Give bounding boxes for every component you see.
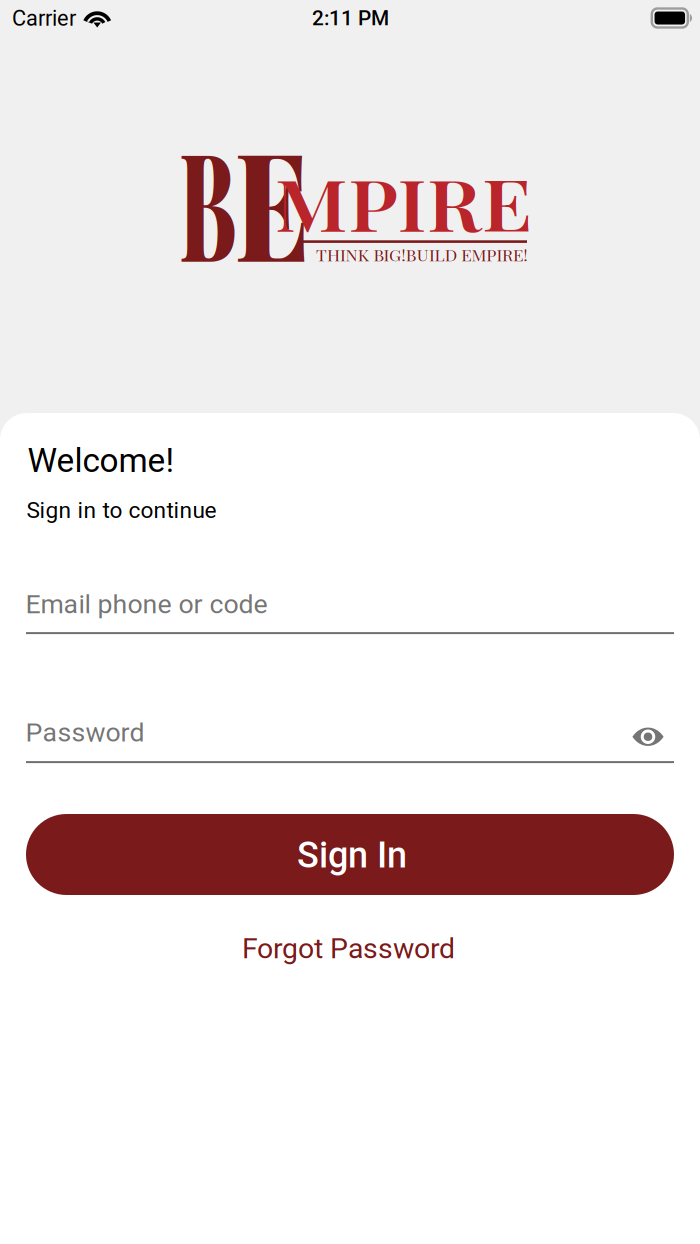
staticText: MPIRE <box>275 155 510 253</box>
button[interactable]: Show password <box>623 716 673 758</box>
staticText: Sign In <box>297 834 407 876</box>
staticText: Carrier <box>12 6 76 31</box>
staticText: Password <box>25 717 144 748</box>
staticText: Email phone or code <box>25 588 267 620</box>
button[interactable]: Forgot Password <box>242 932 482 978</box>
staticText: B <box>179 100 282 295</box>
staticText: Sign in to continue <box>27 497 217 524</box>
staticText: 2:11 PM <box>312 6 389 30</box>
button[interactable]: Sign In <box>26 814 674 895</box>
staticText: Forgot Password <box>242 932 455 965</box>
staticText: THINK BIG!BUILD EMPIRE! <box>316 244 545 269</box>
staticText: E <box>235 100 330 295</box>
staticText: Welcome! <box>27 441 174 480</box>
